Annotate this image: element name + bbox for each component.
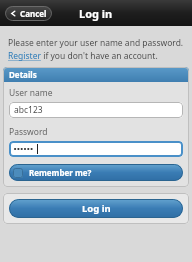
staticText: Log in xyxy=(82,202,111,215)
staticText: Remember me? xyxy=(29,167,92,178)
button[interactable]: Cancel xyxy=(5,6,52,21)
staticText: Password xyxy=(9,126,48,138)
staticText: Please enter your user name and password… xyxy=(8,37,184,49)
staticText: if you don't have an account. xyxy=(41,50,158,62)
staticText: abc123 xyxy=(14,104,43,116)
staticText: Log in xyxy=(79,6,113,21)
button[interactable]: Remember me? xyxy=(9,164,183,181)
button[interactable]: Log in xyxy=(9,199,183,218)
staticText: Register xyxy=(8,50,41,62)
staticText: User name xyxy=(9,87,53,99)
staticText: Cancel xyxy=(20,8,47,19)
staticText: Details xyxy=(9,69,37,80)
button[interactable]: Register xyxy=(8,50,41,62)
button[interactable] xyxy=(9,141,183,157)
button[interactable]: abc123 xyxy=(9,102,183,118)
